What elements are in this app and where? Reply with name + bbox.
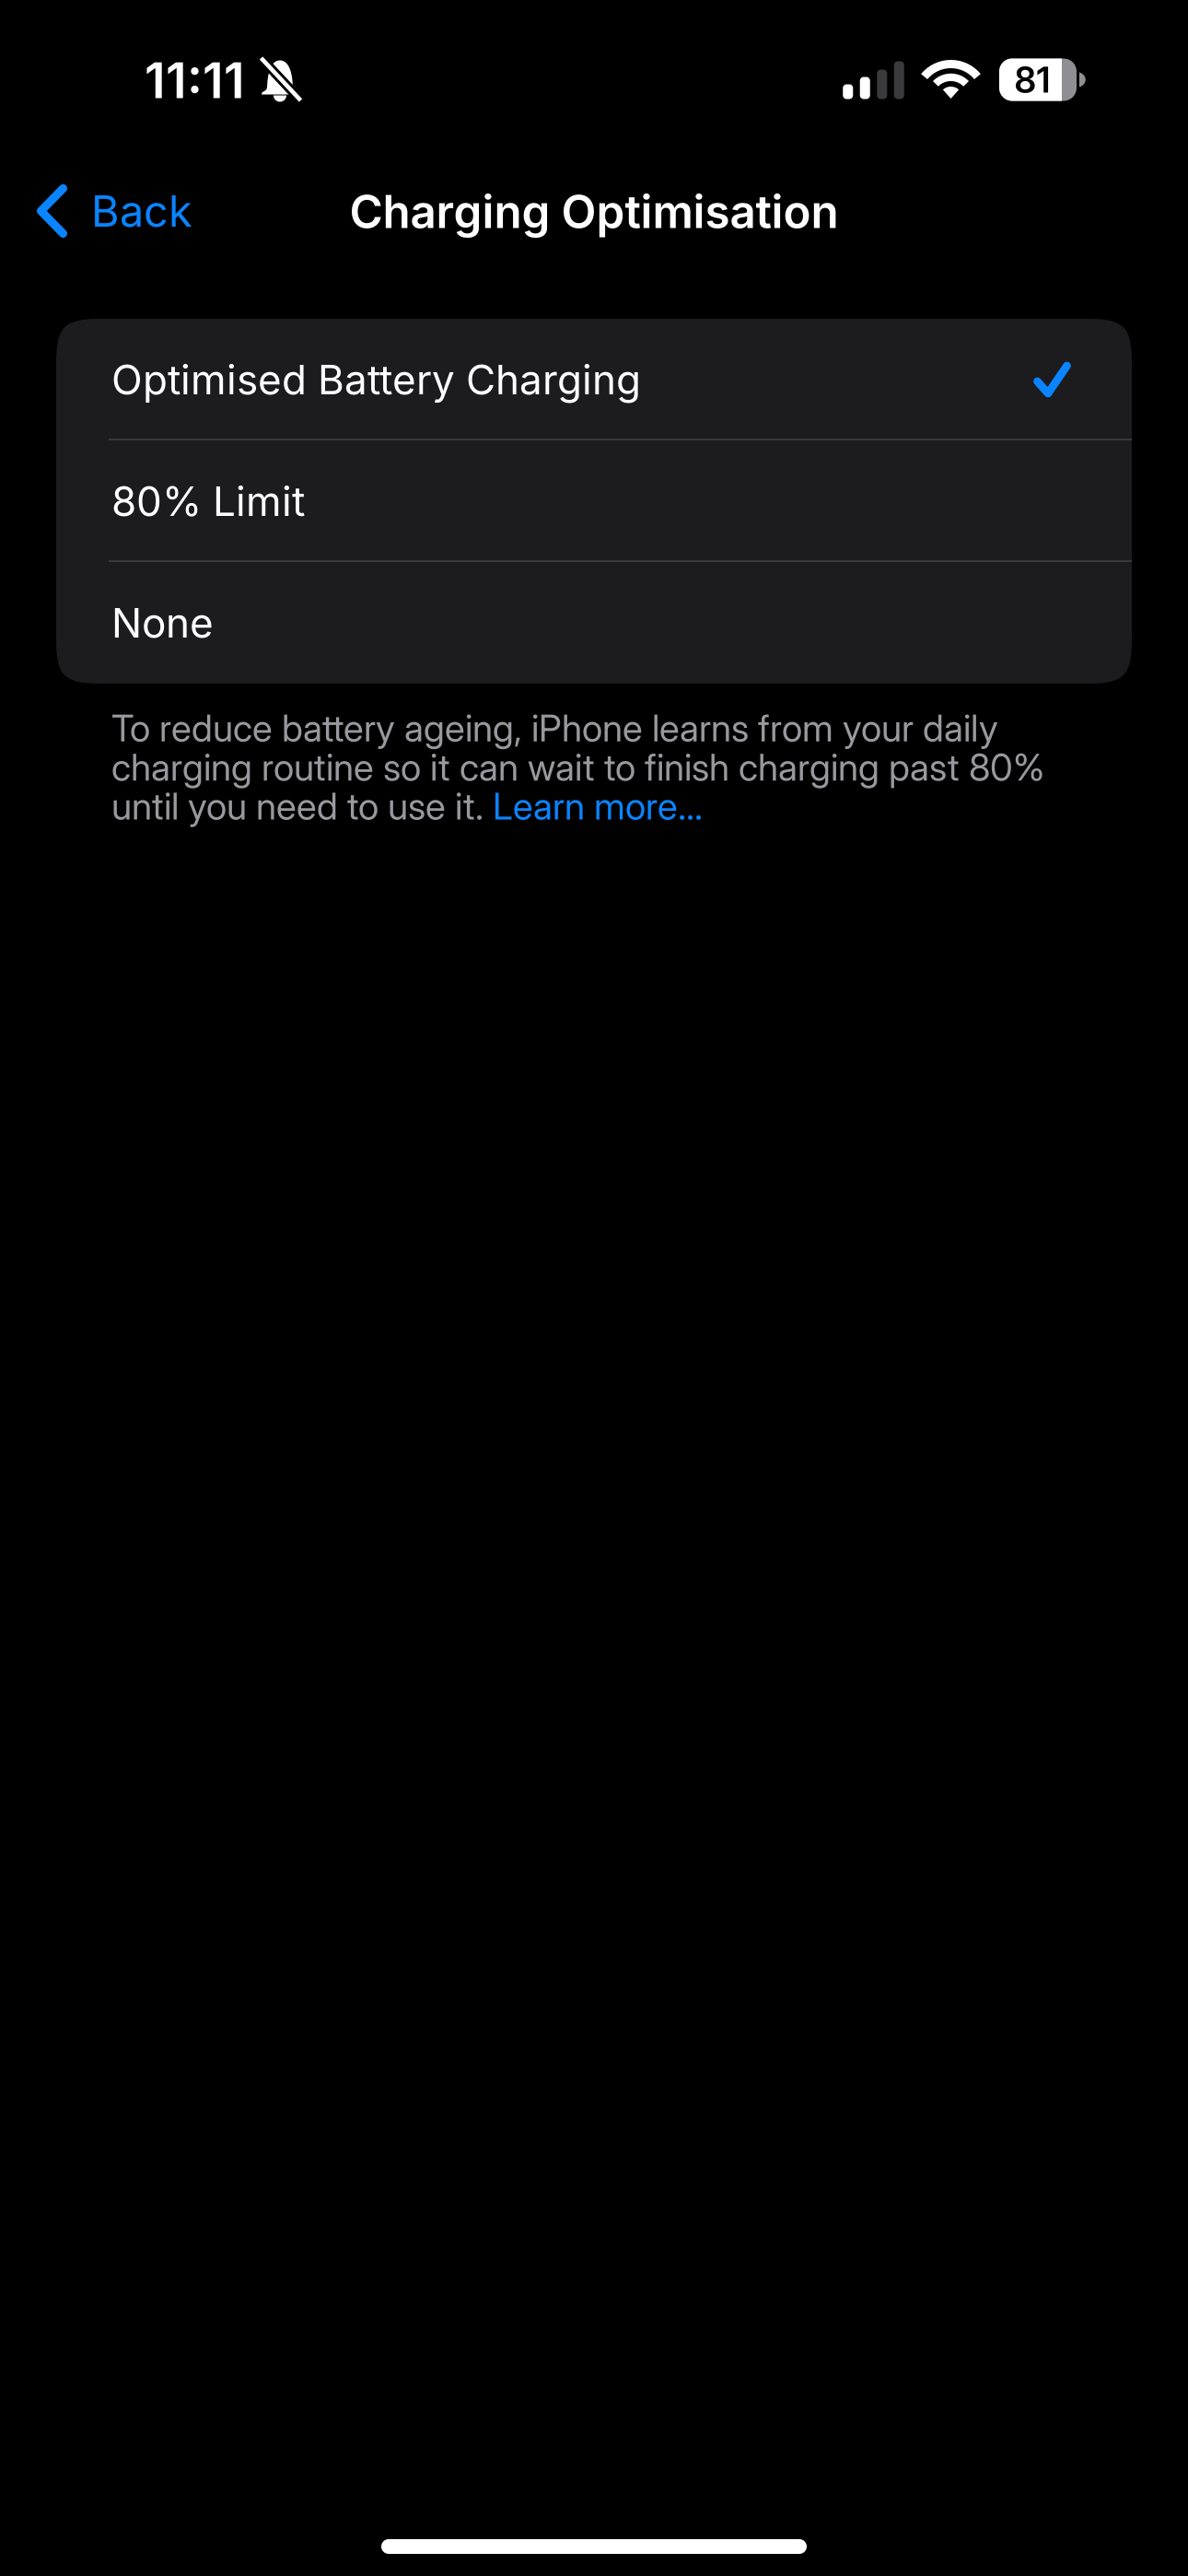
staticText: None xyxy=(111,598,214,647)
staticText: Optimised Battery Charging xyxy=(111,355,641,404)
button[interactable]: None xyxy=(56,562,1132,684)
button[interactable]: Optimised Battery Charging xyxy=(56,319,1132,440)
staticText: Charging Optimisation xyxy=(349,184,839,239)
staticText: 80% Limit xyxy=(111,477,305,526)
staticText: To reduce battery ageing, iPhone learns … xyxy=(111,706,1044,828)
staticText: 81 xyxy=(1014,58,1050,101)
staticText: Back xyxy=(91,185,192,237)
staticText: 11:11 xyxy=(145,50,245,110)
button[interactable]: Back xyxy=(26,166,204,256)
button[interactable]: 80% Limit xyxy=(56,440,1132,562)
